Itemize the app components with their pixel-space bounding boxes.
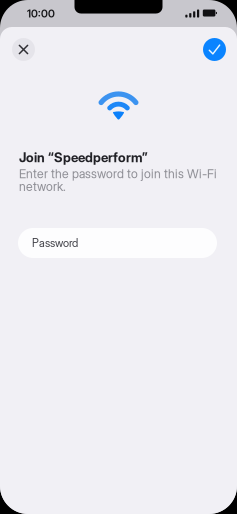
staticText: Password	[32, 236, 78, 250]
staticText: Join “Speedperform”	[19, 149, 148, 165]
button[interactable]: Join network	[203, 38, 225, 60]
button[interactable]: Close	[12, 38, 34, 60]
staticText: 10:00	[27, 7, 55, 20]
staticText: Enter the password to join this Wi-Fi ne…	[19, 166, 217, 194]
